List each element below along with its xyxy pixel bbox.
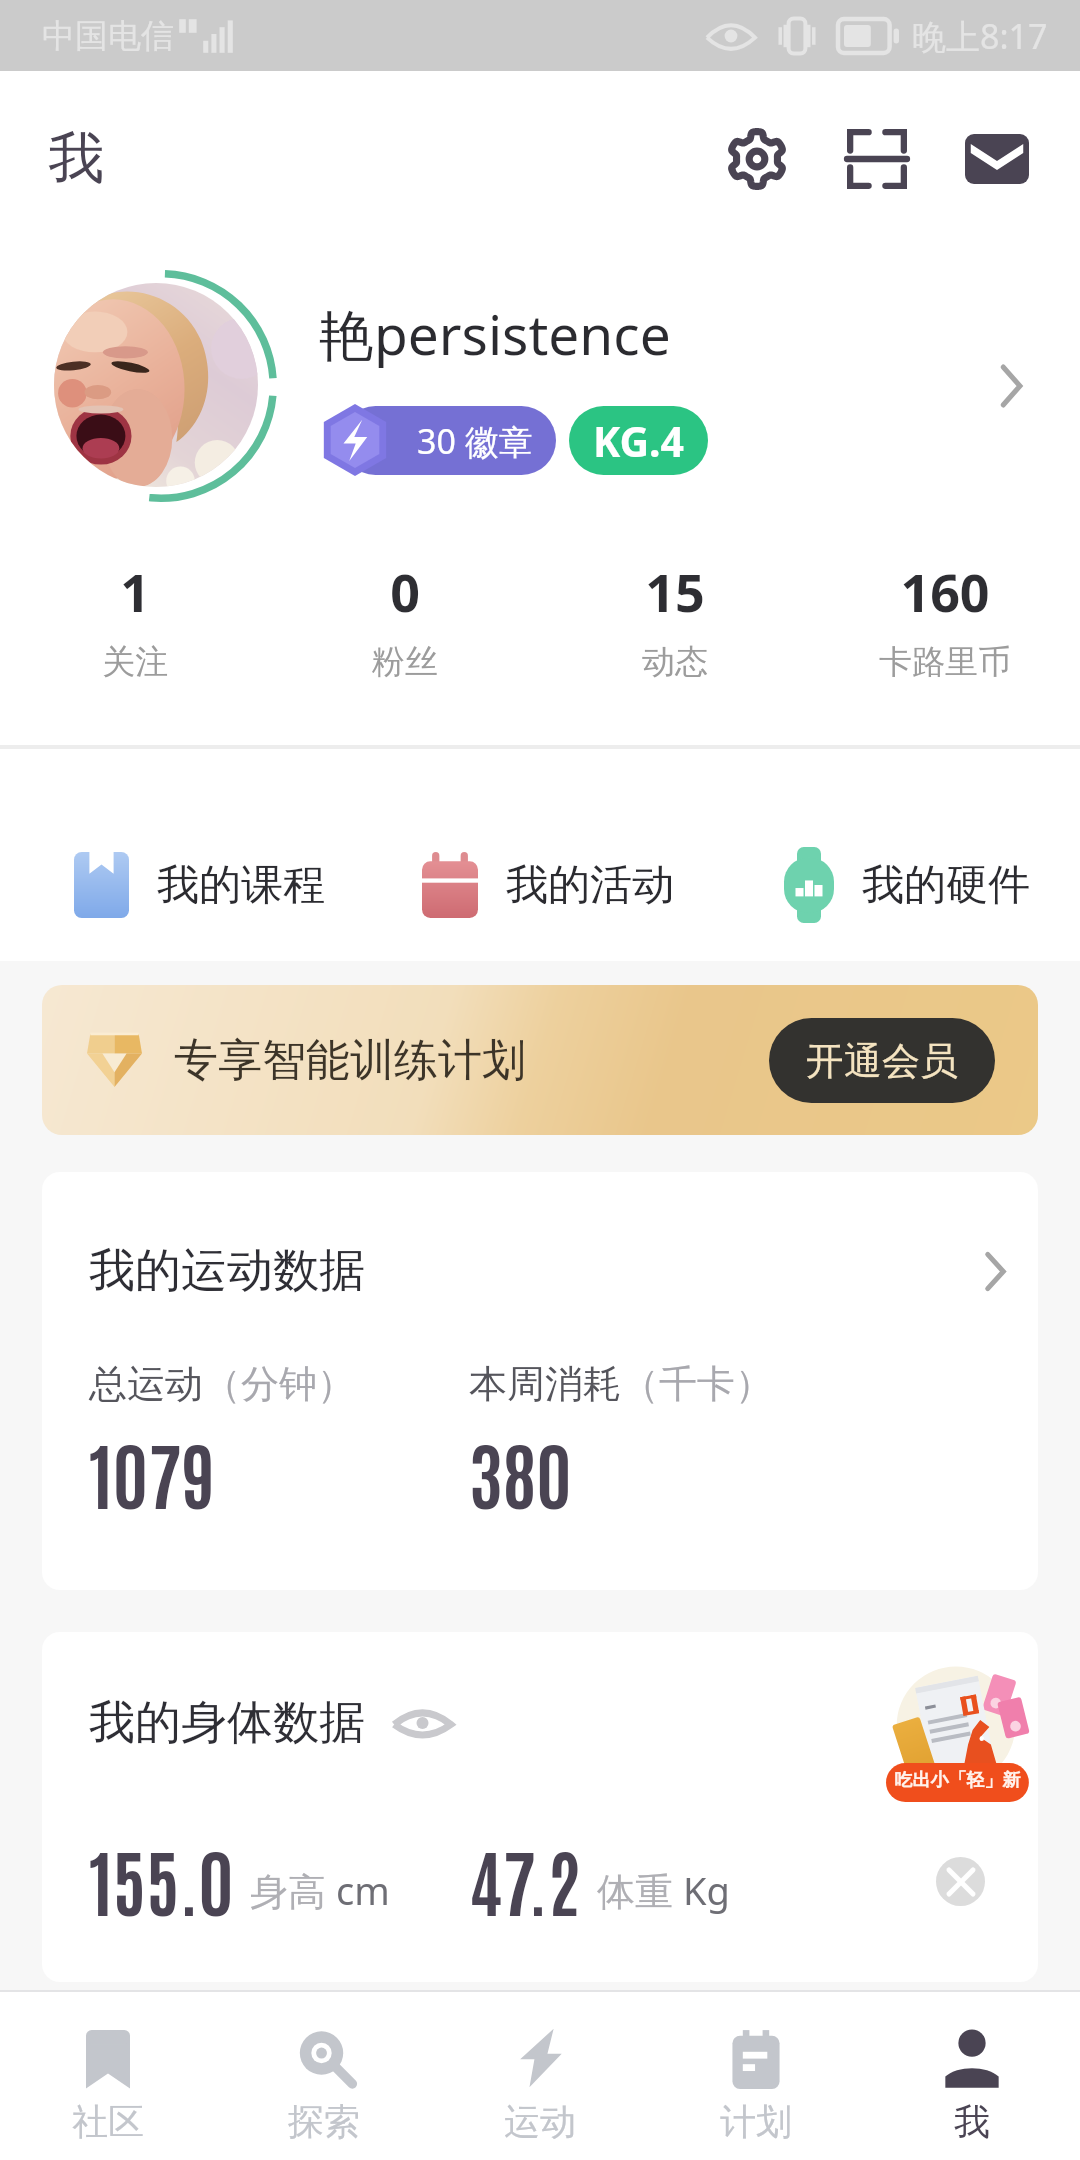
button[interactable]: 我的身体数据 xyxy=(42,1632,1038,1982)
staticText: cm xyxy=(336,1864,390,1916)
staticText: 1079 xyxy=(89,1426,216,1519)
staticText: 关注 xyxy=(102,641,168,683)
staticText: 粉丝 xyxy=(372,641,438,683)
staticText: 380 xyxy=(469,1426,572,1519)
staticText: 160 xyxy=(900,556,990,627)
button[interactable]: 0 xyxy=(270,525,540,745)
staticText: 社区 xyxy=(72,2099,144,2144)
staticText: 0 xyxy=(390,556,420,627)
staticText: 探索 xyxy=(288,2099,360,2144)
staticText: 本周消耗 xyxy=(469,1360,621,1408)
staticText: 我的课程 xyxy=(157,859,325,912)
button[interactable]: 我的硬件 xyxy=(720,829,1080,941)
button[interactable]: 专享智能训练计划 xyxy=(42,985,1038,1135)
staticText: 艳persistence xyxy=(319,296,671,371)
staticText: （千卡） xyxy=(621,1360,773,1408)
staticText: （分钟） xyxy=(203,1360,355,1408)
staticText: KG.4 xyxy=(593,413,685,469)
staticText: 开通会员 xyxy=(806,1037,958,1085)
button[interactable]: 我的活动 xyxy=(360,829,720,941)
button[interactable]: 160 xyxy=(810,525,1080,745)
staticText: 1 xyxy=(120,556,150,627)
other: Open profile xyxy=(976,351,1046,421)
button[interactable]: Scan code xyxy=(832,114,922,204)
staticText: 运动 xyxy=(504,2099,576,2144)
staticText: 我的身体数据 xyxy=(89,1694,365,1752)
staticText: 吃出小「轻」新 xyxy=(886,1769,1029,1792)
button[interactable]: 计划 xyxy=(648,1992,864,2160)
button[interactable]: 我的运动数据 xyxy=(42,1172,1038,1590)
button[interactable]: 15 xyxy=(540,525,810,745)
button[interactable]: 开通会员 xyxy=(769,1018,995,1103)
button[interactable]: 1 xyxy=(0,525,270,745)
staticText: 身高 xyxy=(250,1864,336,1916)
button[interactable]: 我的课程 xyxy=(0,829,360,941)
staticText: 我的硬件 xyxy=(862,859,1030,912)
staticText: 专享智能训练计划 xyxy=(174,1033,526,1088)
staticText: Kg xyxy=(683,1864,730,1916)
staticText: 15 xyxy=(645,556,705,627)
staticText: 中国电信 xyxy=(42,15,174,57)
staticText: 晚上8:17 xyxy=(912,13,1048,59)
staticText: 155.0 xyxy=(89,1833,234,1926)
staticText: 47.2 xyxy=(469,1833,581,1926)
staticText: 总运动 xyxy=(89,1360,203,1408)
staticText: 卡路里币 xyxy=(879,641,1011,683)
button[interactable]: KG.4 xyxy=(569,406,708,475)
staticText: 我 xyxy=(48,123,104,194)
button[interactable]: 探索 xyxy=(216,1992,432,2160)
button[interactable]: Promotion xyxy=(886,1658,1038,1802)
staticText: 我的运动数据 xyxy=(89,1242,365,1300)
button[interactable]: 运动 xyxy=(432,1992,648,2160)
button[interactable]: 艳persistence xyxy=(0,246,1080,525)
staticText: 我的活动 xyxy=(506,859,674,912)
button[interactable]: 30 徽章 xyxy=(341,406,556,475)
button[interactable]: 社区 xyxy=(0,1992,216,2160)
staticText: 30 徽章 xyxy=(417,418,533,464)
button[interactable]: 我 xyxy=(864,1992,1080,2160)
staticText: 我 xyxy=(954,2099,990,2144)
button[interactable]: Settings xyxy=(712,114,802,204)
staticText: 体重 xyxy=(597,1864,683,1916)
button[interactable]: Close promotion xyxy=(936,1857,985,1906)
staticText: 动态 xyxy=(642,641,708,683)
button[interactable]: Messages xyxy=(952,114,1042,204)
staticText: 计划 xyxy=(720,2099,792,2144)
